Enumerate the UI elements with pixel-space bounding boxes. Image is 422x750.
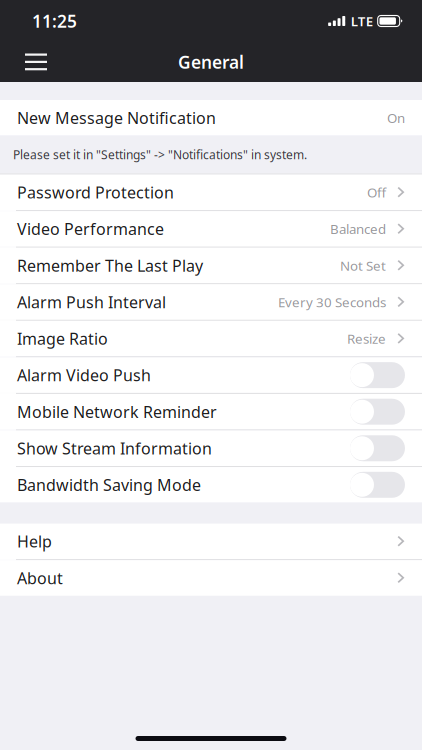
staticText: Balanced	[330, 220, 386, 238]
button[interactable]: Video Performance	[0, 211, 422, 247]
button[interactable]: New Message Notification	[0, 100, 422, 136]
staticText: Remember The Last Play	[17, 255, 203, 276]
staticText: Bandwidth Saving Mode	[17, 474, 201, 495]
staticText: LTE	[351, 12, 373, 30]
button[interactable]: About	[0, 560, 422, 596]
staticText: Every 30 Seconds	[278, 293, 386, 311]
staticText: New Message Notification	[17, 107, 216, 128]
staticText: Video Performance	[17, 218, 164, 239]
staticText: Help	[17, 531, 52, 552]
staticText: 11:25	[32, 9, 77, 32]
staticText: Password Protection	[17, 182, 174, 203]
button[interactable]: Menu	[0, 42, 61, 81]
staticText: Off	[367, 183, 386, 201]
staticText: On	[387, 109, 405, 127]
staticText: Image Ratio	[17, 328, 108, 349]
staticText: Please set it in "Settings" -> "Notifica…	[13, 147, 307, 162]
button[interactable]: Show Stream Information	[0, 430, 422, 466]
staticText: Alarm Video Push	[17, 364, 151, 386]
staticText: Show Stream Information	[17, 438, 212, 459]
staticText: Resize	[347, 330, 386, 347]
button[interactable]: Mobile Network Reminder	[0, 394, 422, 429]
button[interactable]: Alarm Push Interval	[0, 284, 422, 320]
staticText: General	[178, 50, 244, 73]
staticText: Not Set	[340, 257, 386, 274]
staticText: Mobile Network Reminder	[17, 401, 217, 422]
button[interactable]: Alarm Video Push	[0, 357, 422, 393]
button[interactable]: Password Protection	[0, 175, 422, 210]
button[interactable]: Help	[0, 524, 422, 559]
button[interactable]: Bandwidth Saving Mode	[0, 467, 422, 503]
button[interactable]: Remember The Last Play	[0, 248, 422, 283]
staticText: About	[17, 567, 63, 588]
staticText: Alarm Push Interval	[17, 291, 166, 313]
button[interactable]: Image Ratio	[0, 321, 422, 356]
